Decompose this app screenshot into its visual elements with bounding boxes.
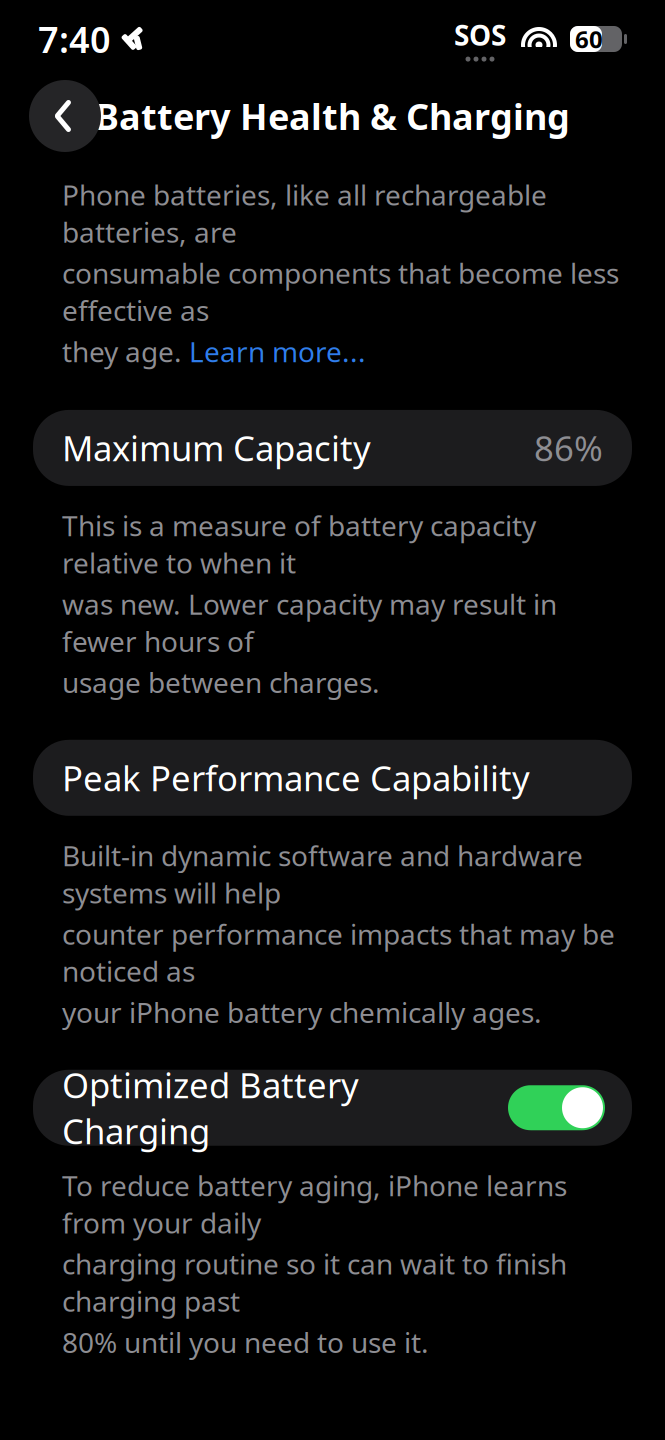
staticText: Peak Performance Capability [62, 755, 530, 801]
staticText: Learn more... [189, 333, 366, 370]
button[interactable]: Peak Performance Capability [33, 740, 632, 816]
staticText: charging routine so it can wait to finis… [62, 1245, 567, 1319]
staticText: To reduce battery aging, iPhone learns f… [62, 1167, 567, 1241]
staticText: 7:40 [38, 15, 111, 63]
staticText: Phone batteries, like all rechargeable b… [62, 176, 547, 250]
button[interactable]: Learn more... [189, 333, 366, 370]
staticText: Maximum Capacity [62, 425, 371, 471]
button[interactable]: Optimized Battery Charging [33, 1070, 632, 1146]
staticText: This is a measure of battery capacity re… [62, 507, 536, 581]
staticText: SOS [454, 16, 506, 54]
staticText: consumable components that become less e… [62, 254, 619, 329]
staticText: Battery Health & Charging [95, 92, 570, 140]
staticText: was new. Lower capacity may result in fe… [62, 585, 557, 660]
staticText: 80% until you need to use it. [62, 1323, 429, 1361]
staticText: usage between charges. [62, 664, 380, 701]
button[interactable]: Maximum Capacity [33, 410, 632, 486]
staticText: 86% [534, 425, 603, 471]
staticText: counter performance impacts that may be … [62, 915, 615, 990]
staticText: Built-in dynamic software and hardware s… [62, 837, 583, 911]
staticText: Optimized Battery Charging [62, 1062, 359, 1154]
staticText: your iPhone battery chemically ages. [62, 994, 542, 1031]
button[interactable]: Back [29, 80, 101, 152]
staticText: they age. [62, 333, 189, 370]
staticText: 60 [575, 23, 603, 55]
